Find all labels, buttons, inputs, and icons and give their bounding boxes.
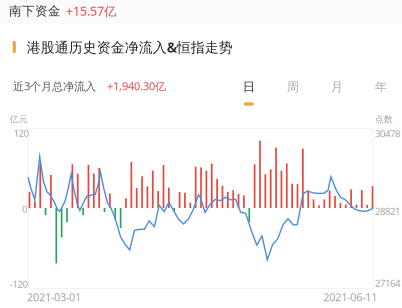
staticText: 2021-06-11 — [323, 290, 377, 304]
staticText: 日 — [243, 79, 255, 95]
staticText: 30478 — [375, 127, 400, 140]
staticText: 港股通历史资金净流入&恒指走势 — [27, 38, 233, 56]
staticText: 周 — [287, 79, 299, 95]
staticText: 南下资金 — [9, 3, 61, 19]
staticText: 点数 — [375, 114, 393, 125]
button[interactable]: 周 — [271, 76, 315, 110]
staticText: 27164 — [375, 276, 400, 290]
staticText: 28821 — [375, 204, 400, 218]
staticText: -120 — [10, 277, 28, 291]
staticText: 0 — [22, 202, 27, 216]
staticText: +15.57亿 — [66, 2, 117, 20]
staticText: 年 — [375, 79, 387, 95]
staticText: 亿元 — [10, 114, 28, 125]
button[interactable]: 年 — [359, 76, 402, 110]
button[interactable]: 月 — [315, 76, 359, 110]
button[interactable]: 日 — [227, 76, 271, 110]
staticText: 120 — [13, 126, 28, 140]
staticText: 月 — [331, 79, 343, 95]
staticText: 近3个月总净流入 — [13, 78, 96, 94]
staticText: 2021-03-01 — [27, 290, 81, 304]
staticText: +1,940.30亿 — [107, 78, 166, 94]
